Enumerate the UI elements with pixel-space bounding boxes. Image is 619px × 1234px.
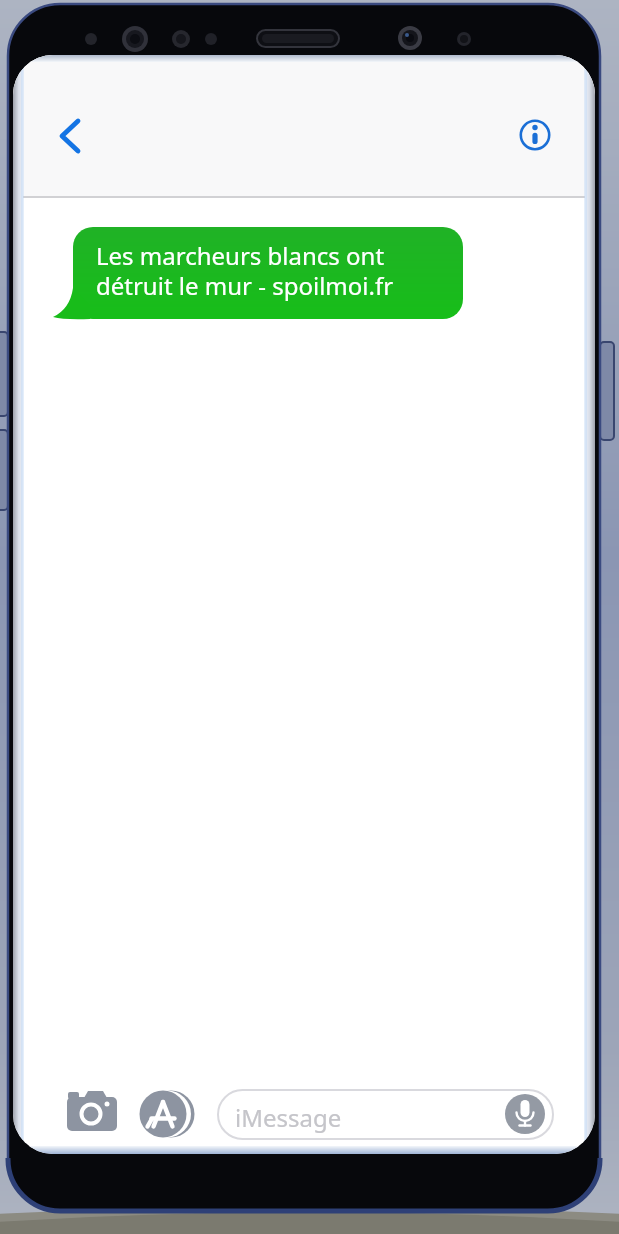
button[interactable]	[218, 1090, 553, 1139]
button[interactable]	[48, 108, 92, 164]
button[interactable]	[505, 1094, 545, 1134]
staticText: iMessage	[235, 1101, 342, 1134]
button[interactable]	[61, 1086, 123, 1138]
button[interactable]	[513, 113, 557, 157]
button[interactable]	[139, 1090, 187, 1138]
staticText: Les marcheurs blancs ont détruit le mur …	[96, 239, 394, 302]
button[interactable]	[73, 227, 463, 319]
